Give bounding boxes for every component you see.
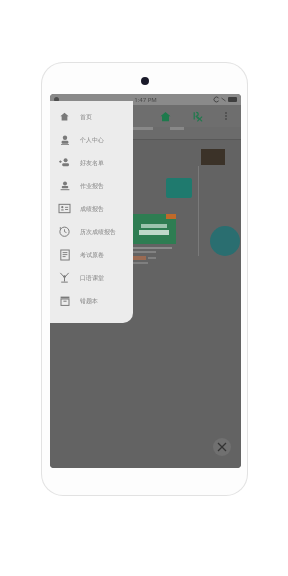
button[interactable]: 首页: [50, 105, 133, 128]
button[interactable]: More options: [217, 107, 235, 125]
button[interactable]: 成绩报告: [50, 197, 133, 220]
button[interactable]: 个人中心: [50, 128, 133, 151]
button[interactable]: 口语课堂: [50, 266, 133, 289]
button[interactable]: [82, 214, 126, 264]
staticText: 个人中心: [80, 136, 104, 144]
staticText: 成绩报告: [80, 205, 104, 213]
staticText: 1:47 PM: [134, 96, 157, 104]
staticText: 作业报告: [80, 182, 104, 190]
staticText: 口语课堂: [80, 274, 104, 282]
button[interactable]: 历次成绩报告: [50, 220, 133, 243]
button[interactable]: Home: [155, 106, 175, 126]
staticText: 好友名单: [80, 159, 104, 167]
staticText: 错题本: [80, 297, 98, 305]
button[interactable]: 好友名单: [50, 151, 133, 174]
button[interactable]: 考试原卷: [50, 243, 133, 266]
staticText: 考试原卷: [80, 251, 104, 259]
staticText: 历次成绩报告: [80, 228, 116, 236]
button[interactable]: [132, 214, 176, 264]
button[interactable]: Prescription: [187, 106, 207, 126]
button[interactable]: 作业报告: [50, 174, 133, 197]
button[interactable]: [166, 178, 192, 198]
staticText: 首页: [80, 113, 92, 121]
button[interactable]: Close: [213, 438, 231, 456]
button[interactable]: 错题本: [50, 289, 133, 312]
